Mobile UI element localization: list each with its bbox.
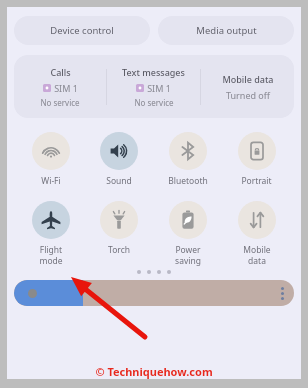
button[interactable]: Mobile data [222,201,291,266]
staticText: Portrait [241,175,272,187]
button[interactable]: Torch [85,201,153,256]
button[interactable]: Calls [14,55,294,118]
staticText: Power saving [175,244,201,266]
staticText: Bluetooth [168,175,208,187]
button[interactable]: Power saving [153,201,222,266]
staticText: No service [40,97,80,108]
staticText: Device control [50,24,114,37]
staticText: Calls [50,66,71,78]
staticText: Torch [108,244,130,256]
staticText: Flight mode [39,244,63,266]
staticText: Sound [106,175,132,187]
staticText: Mobile data [243,244,271,266]
staticText: SIM 1 [54,82,78,94]
staticText: Wi-Fi [41,175,61,187]
button[interactable]: Portrait [222,132,291,187]
button[interactable]: Bluetooth [153,132,222,187]
staticText: Turned off [226,89,270,101]
button[interactable] [14,280,294,306]
button[interactable]: Sound [85,132,153,187]
button[interactable]: Flight mode [17,201,85,266]
staticText: SIM 1 [147,82,171,94]
staticText: No service [134,97,174,108]
button[interactable]: Wi-Fi [17,132,85,187]
staticText: © Techniquehow.com [95,364,213,379]
staticText: Media output [196,24,257,37]
staticText: Text messages [122,66,185,78]
button[interactable]: Device control [14,16,150,45]
button[interactable]: Media output [158,16,294,45]
staticText: Mobile data [222,73,274,85]
